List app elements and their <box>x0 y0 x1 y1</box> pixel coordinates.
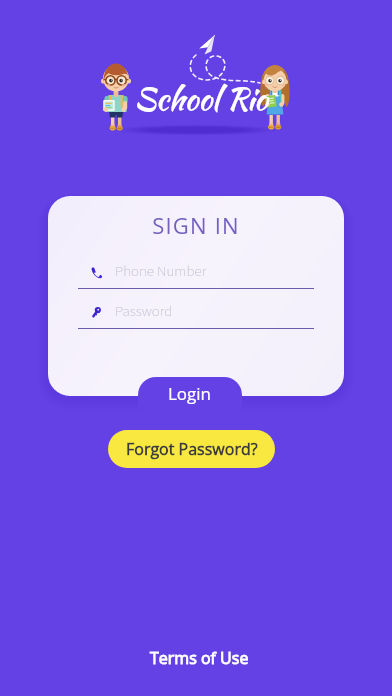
staticText: Password <box>115 301 173 322</box>
staticText: Login <box>168 382 212 405</box>
staticText: Terms of Use <box>150 647 249 669</box>
staticText: SIGN IN <box>48 210 344 240</box>
button[interactable]: Terms of Use <box>140 643 259 673</box>
button[interactable]: Forgot Password? <box>108 430 275 468</box>
staticText: Phone Number <box>115 261 207 282</box>
button[interactable]: Login <box>138 377 242 409</box>
staticText: Forgot Password? <box>126 438 258 460</box>
staticText: School Rio <box>134 76 268 121</box>
